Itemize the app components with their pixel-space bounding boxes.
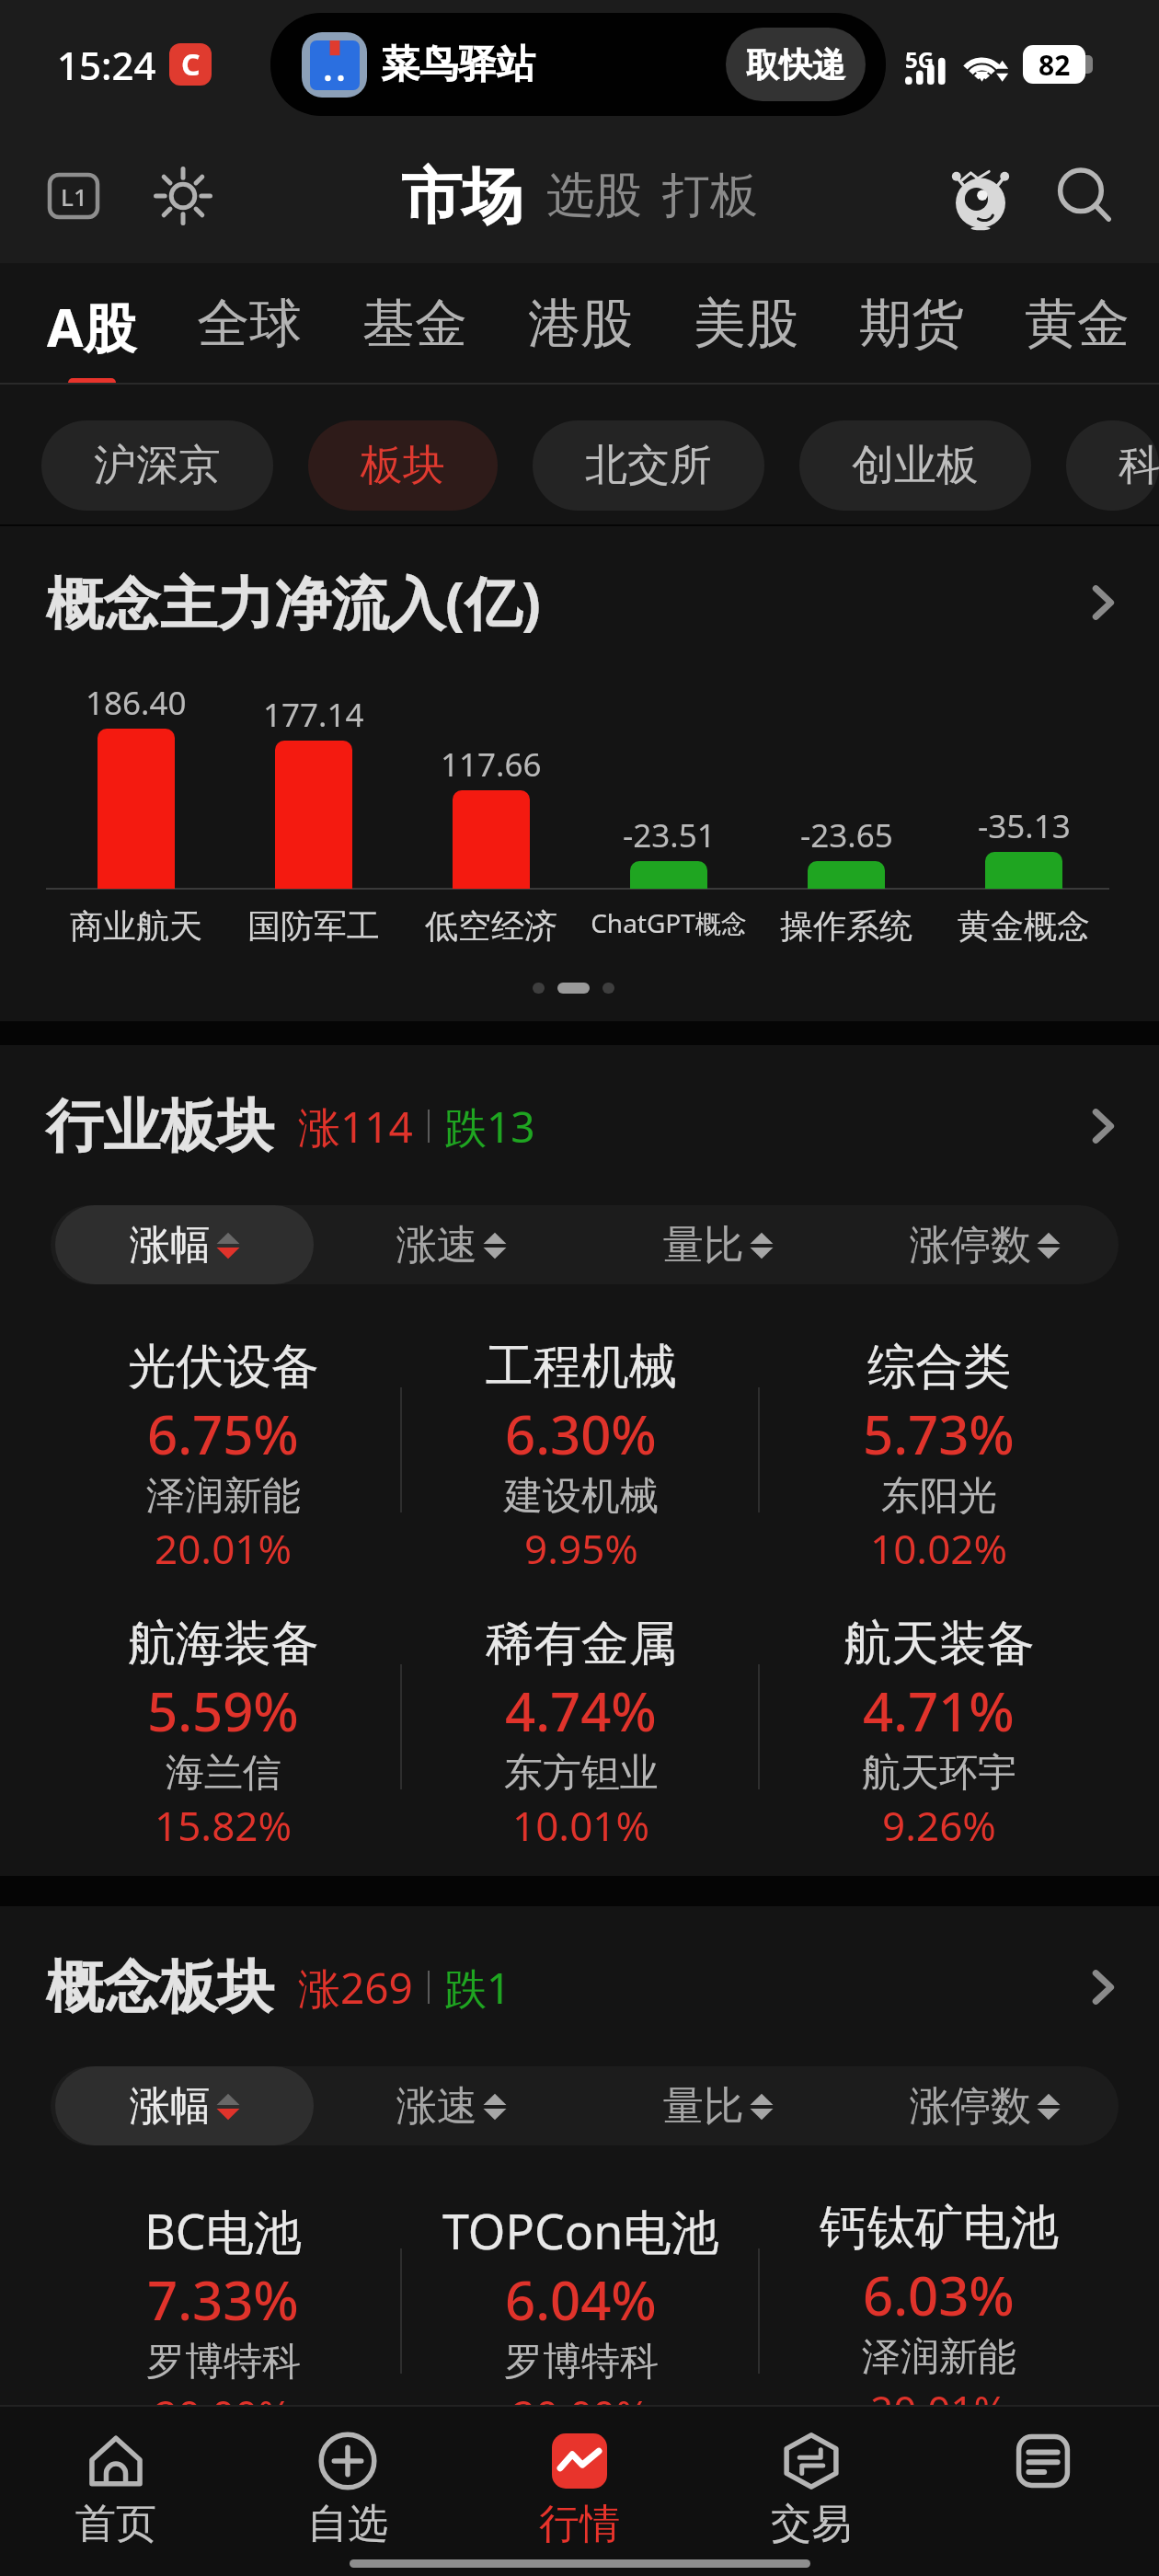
button[interactable]: 量比 bbox=[590, 2066, 847, 2145]
button[interactable]: 全球 bbox=[197, 291, 302, 381]
button[interactable]: 涨速 bbox=[323, 2066, 580, 2145]
staticText: 钙钛矿电池 bbox=[820, 2198, 1059, 2259]
button[interactable]: 美股 bbox=[694, 291, 798, 381]
staticText: 黄金概念 bbox=[958, 905, 1090, 947]
staticText: 全球 bbox=[197, 291, 302, 357]
staticText: 涨幅 bbox=[130, 1220, 211, 1271]
staticText: 罗博特科 bbox=[146, 2338, 301, 2386]
button[interactable]: Assistant bbox=[946, 161, 1016, 231]
staticText: 跌1 bbox=[444, 1959, 511, 2017]
staticText: 航海装备 bbox=[128, 1614, 319, 1674]
button[interactable]: News bbox=[927, 2429, 1159, 2576]
staticText: 15.82% bbox=[155, 1798, 293, 1853]
button[interactable]: Brightness bbox=[153, 166, 213, 226]
staticText: 操作系统 bbox=[780, 905, 912, 947]
staticText: 行业板块 bbox=[46, 1090, 274, 1162]
staticText: 量比 bbox=[663, 1220, 744, 1271]
staticText: 综合类 bbox=[867, 1337, 1011, 1397]
button[interactable]: 行业板块 bbox=[46, 1090, 1124, 1162]
staticText: ChatGPT概念 bbox=[591, 905, 747, 940]
staticText: 基金 bbox=[362, 291, 467, 357]
staticText: -23.51 bbox=[623, 813, 716, 857]
staticText: 6.75% bbox=[147, 1397, 299, 1470]
button[interactable]: 期货 bbox=[859, 291, 964, 381]
button[interactable]: 涨停数 bbox=[856, 2066, 1114, 2145]
staticText: 6.30% bbox=[505, 1397, 657, 1470]
staticText: A股 bbox=[47, 291, 136, 362]
button[interactable]: 航天装备 bbox=[760, 1599, 1118, 1876]
button[interactable]: 涨停数 bbox=[856, 1205, 1114, 1284]
button[interactable]: 工程机械 bbox=[402, 1322, 760, 1599]
staticText: 82 bbox=[1039, 46, 1071, 84]
button[interactable]: 航海装备 bbox=[44, 1599, 402, 1876]
staticText: 9.95% bbox=[524, 1521, 638, 1576]
button[interactable]: 钙钛矿电池 bbox=[760, 2183, 1118, 2460]
staticText: 涨停数 bbox=[910, 2081, 1031, 2132]
staticText: 10.01% bbox=[512, 1798, 650, 1853]
staticText: 稀有金属 bbox=[486, 1614, 677, 1674]
button[interactable]: 交易 bbox=[695, 2429, 927, 2576]
button[interactable]: Level 1 quotes bbox=[44, 167, 103, 225]
staticText: 涨速 bbox=[396, 2081, 477, 2132]
button[interactable]: 量比 bbox=[590, 1205, 847, 1284]
staticText: 186.40 bbox=[86, 681, 187, 725]
staticText: TOPCon电池 bbox=[442, 2198, 719, 2263]
button[interactable]: 市场 bbox=[401, 158, 522, 235]
button[interactable]: 创业板 bbox=[799, 420, 1031, 511]
button[interactable]: 港股 bbox=[528, 291, 633, 381]
staticText: BC电池 bbox=[144, 2198, 302, 2263]
button[interactable]: 打板 bbox=[662, 166, 758, 226]
button[interactable]: 首页 bbox=[0, 2429, 232, 2576]
staticText: 商业航天 bbox=[70, 905, 202, 947]
button[interactable]: 科创板 bbox=[1066, 420, 1159, 511]
button[interactable]: 概念板块 bbox=[46, 1951, 1124, 2023]
staticText: 5.73% bbox=[863, 1397, 1015, 1470]
staticText: 黄金 bbox=[1025, 291, 1130, 357]
staticText: 6.03% bbox=[863, 2259, 1015, 2331]
button[interactable]: A股 bbox=[47, 291, 136, 385]
staticText: -35.13 bbox=[978, 804, 1071, 848]
button[interactable]: 取快递 bbox=[726, 28, 866, 101]
button[interactable]: BC电池 bbox=[44, 2183, 402, 2460]
button[interactable]: TOPCon电池 bbox=[402, 2183, 760, 2460]
staticText: 东方钽业 bbox=[504, 1749, 659, 1798]
staticText: 航天装备 bbox=[843, 1614, 1035, 1674]
button[interactable]: 行情 bbox=[464, 2429, 695, 2576]
staticText: 航天环宇 bbox=[862, 1749, 1016, 1798]
staticText: 117.66 bbox=[441, 742, 542, 787]
staticText: 20.00% bbox=[155, 2386, 293, 2442]
staticText: 4.74% bbox=[505, 1674, 657, 1747]
button[interactable]: 黄金 bbox=[1025, 291, 1130, 381]
staticText: 创业板 bbox=[852, 439, 979, 492]
staticText: C bbox=[181, 44, 201, 85]
staticText: 涨停数 bbox=[910, 1220, 1031, 1271]
staticText: 首页 bbox=[75, 2499, 156, 2549]
button[interactable]: 综合类 bbox=[760, 1322, 1118, 1599]
button[interactable]: 涨速 bbox=[323, 1205, 580, 1284]
button[interactable]: 自选 bbox=[232, 2429, 464, 2576]
button[interactable]: 沪深京 bbox=[41, 420, 273, 511]
staticText: 5.59% bbox=[147, 1674, 299, 1747]
staticText: 涨幅 bbox=[130, 2081, 211, 2132]
staticText: 跌13 bbox=[444, 1098, 535, 1156]
button[interactable]: 涨幅 bbox=[55, 1205, 314, 1284]
button[interactable]: 光伏设备 bbox=[44, 1322, 402, 1599]
button[interactable]: 选股 bbox=[546, 166, 642, 226]
button[interactable]: 概念主力净流入(亿) bbox=[46, 563, 1124, 641]
staticText: 涨269 bbox=[298, 1959, 413, 2017]
staticText: 概念板块 bbox=[46, 1951, 274, 2023]
staticText: 20.01% bbox=[870, 2382, 1008, 2437]
button[interactable]: 北交所 bbox=[533, 420, 764, 511]
staticText: -23.65 bbox=[800, 813, 893, 857]
button[interactable]: 基金 bbox=[362, 291, 467, 381]
staticText: 东阳光 bbox=[881, 1472, 997, 1521]
button[interactable]: 稀有金属 bbox=[402, 1599, 760, 1876]
staticText: 板块 bbox=[361, 439, 445, 492]
staticText: 沪深京 bbox=[94, 439, 221, 492]
button[interactable]: 涨幅 bbox=[55, 2066, 314, 2145]
staticText: 量比 bbox=[663, 2081, 744, 2132]
staticText: 涨速 bbox=[396, 1220, 477, 1271]
button[interactable]: 板块 bbox=[308, 420, 498, 511]
button[interactable]: Search bbox=[1050, 161, 1120, 231]
staticText: 建设机械 bbox=[504, 1472, 659, 1521]
